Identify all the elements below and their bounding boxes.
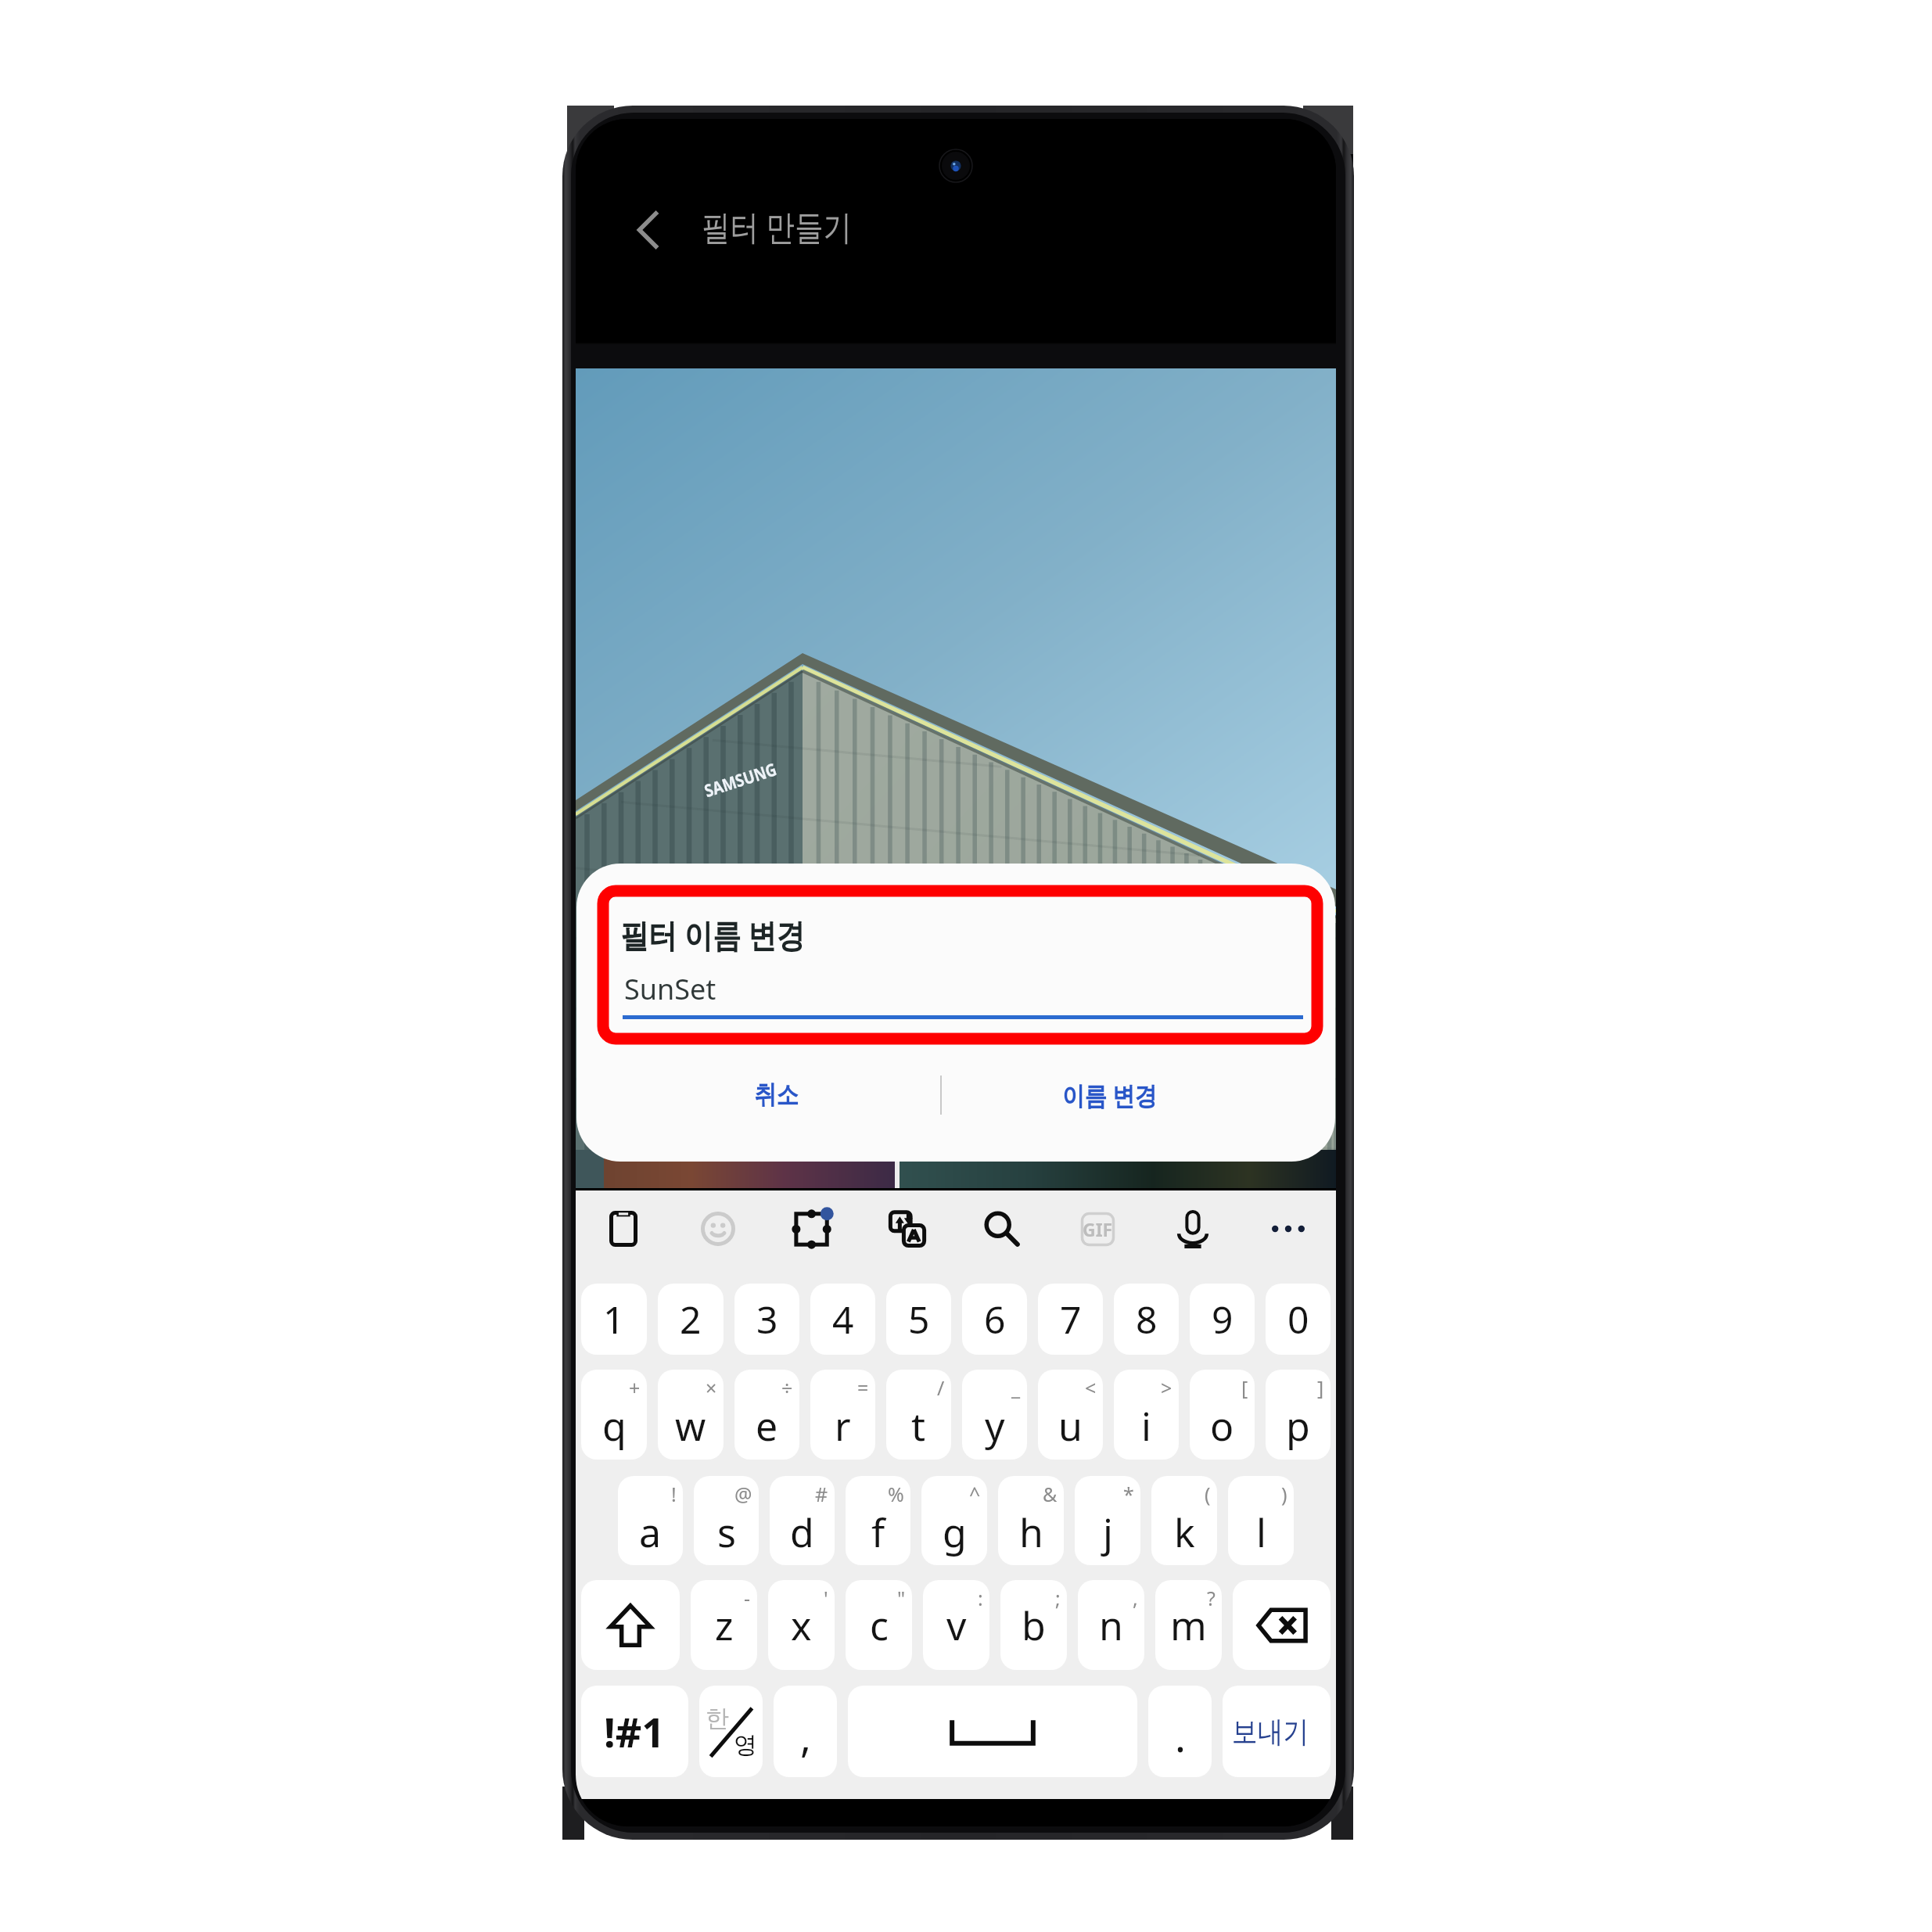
staticText: 한 bbox=[706, 1704, 729, 1733]
button[interactable]: 이름 변경 bbox=[942, 1048, 1335, 1142]
staticText: , bbox=[1133, 1585, 1138, 1611]
button[interactable]: 취소 bbox=[576, 1048, 941, 1142]
button[interactable]: w bbox=[658, 1370, 724, 1460]
staticText: & bbox=[1043, 1481, 1058, 1507]
staticText: l bbox=[1256, 1506, 1266, 1559]
button[interactable]: Backspace bbox=[1233, 1580, 1330, 1670]
button[interactable]: 1 bbox=[581, 1284, 647, 1355]
button[interactable]: 8 bbox=[1114, 1284, 1179, 1355]
button[interactable]: v bbox=[923, 1580, 989, 1670]
staticText: b bbox=[1022, 1599, 1046, 1652]
button[interactable]: 5 bbox=[886, 1284, 951, 1355]
staticText: m bbox=[1170, 1599, 1207, 1652]
button[interactable]: a bbox=[618, 1476, 683, 1565]
staticText: _ bbox=[1011, 1374, 1021, 1401]
staticText: k bbox=[1174, 1506, 1195, 1559]
button[interactable]: z bbox=[691, 1580, 757, 1670]
button[interactable]: r bbox=[810, 1370, 875, 1460]
staticText: n bbox=[1099, 1599, 1123, 1652]
button[interactable]: t bbox=[886, 1370, 951, 1460]
button[interactable]: Shift bbox=[581, 1580, 680, 1670]
button[interactable]: Translate bbox=[860, 1190, 954, 1267]
button[interactable]: Voice input bbox=[1145, 1190, 1241, 1267]
staticText: × bbox=[706, 1374, 717, 1401]
staticText: / bbox=[937, 1374, 945, 1401]
staticText: 4 bbox=[832, 1294, 854, 1345]
button[interactable]: e bbox=[734, 1370, 799, 1460]
button[interactable]: s bbox=[694, 1476, 759, 1565]
button[interactable]: 9 bbox=[1190, 1284, 1255, 1355]
button[interactable]: d bbox=[770, 1476, 835, 1565]
button[interactable]: y bbox=[962, 1370, 1027, 1460]
staticText: . bbox=[1175, 1708, 1186, 1764]
staticText: 보내기 bbox=[1232, 1713, 1309, 1751]
button[interactable]: Space bbox=[848, 1686, 1137, 1777]
button[interactable]: 7 bbox=[1038, 1284, 1103, 1355]
button[interactable]: Clipboard bbox=[576, 1190, 670, 1267]
button[interactable]: Emoji bbox=[670, 1190, 765, 1267]
staticText: = bbox=[857, 1374, 869, 1401]
staticText: + bbox=[629, 1374, 641, 1401]
staticText: h bbox=[1019, 1506, 1043, 1559]
button[interactable]: 4 bbox=[810, 1284, 875, 1355]
staticText: SAMSUNG bbox=[701, 757, 779, 802]
button[interactable]: 6 bbox=[962, 1284, 1027, 1355]
staticText: 5 bbox=[908, 1294, 930, 1345]
button[interactable]: Symbols bbox=[581, 1686, 688, 1777]
button[interactable]: p bbox=[1266, 1370, 1330, 1460]
staticText: SunSet bbox=[624, 970, 716, 1008]
staticText: 1 bbox=[603, 1294, 625, 1345]
staticText: " bbox=[897, 1585, 906, 1611]
button[interactable]: b bbox=[1000, 1580, 1067, 1670]
button[interactable]: q bbox=[581, 1370, 647, 1460]
staticText: p bbox=[1286, 1399, 1310, 1453]
button[interactable]: n bbox=[1078, 1580, 1144, 1670]
button[interactable]: l bbox=[1228, 1476, 1294, 1565]
button[interactable]: , bbox=[774, 1686, 837, 1777]
staticText: o bbox=[1210, 1399, 1234, 1453]
staticText: x bbox=[791, 1599, 812, 1652]
staticText: 6 bbox=[984, 1294, 1006, 1345]
button[interactable]: o bbox=[1190, 1370, 1255, 1460]
staticText: ; bbox=[1055, 1585, 1061, 1611]
staticText: GIF bbox=[1083, 1217, 1113, 1241]
button[interactable]: Back bbox=[601, 183, 695, 277]
staticText: , bbox=[800, 1708, 811, 1764]
button[interactable]: x bbox=[768, 1580, 835, 1670]
staticText: # bbox=[815, 1481, 828, 1507]
staticText: g bbox=[943, 1506, 967, 1559]
staticText: v bbox=[946, 1599, 967, 1652]
button[interactable]: 2 bbox=[658, 1284, 724, 1355]
button[interactable]: h bbox=[998, 1476, 1064, 1565]
button[interactable]: Search bbox=[954, 1190, 1050, 1267]
button[interactable]: 0 bbox=[1266, 1284, 1330, 1355]
button[interactable]: i bbox=[1114, 1370, 1179, 1460]
button[interactable]: 3 bbox=[734, 1284, 799, 1355]
staticText: ( bbox=[1205, 1481, 1211, 1507]
staticText: ? bbox=[1207, 1585, 1216, 1611]
staticText: ^ bbox=[969, 1481, 981, 1507]
button[interactable]: g bbox=[921, 1476, 987, 1565]
button[interactable]: j bbox=[1075, 1476, 1140, 1565]
button[interactable]: GIF bbox=[1050, 1190, 1145, 1267]
button[interactable]: Send bbox=[1223, 1686, 1330, 1777]
staticText: ' bbox=[824, 1585, 828, 1611]
staticText: a bbox=[639, 1506, 662, 1559]
button[interactable]: f bbox=[846, 1476, 910, 1565]
button[interactable]: . bbox=[1148, 1686, 1212, 1777]
button[interactable]: u bbox=[1038, 1370, 1103, 1460]
staticText: e bbox=[756, 1399, 778, 1453]
staticText: 8 bbox=[1136, 1294, 1158, 1345]
staticText: !#1 bbox=[604, 1704, 666, 1759]
button[interactable]: k bbox=[1151, 1476, 1217, 1565]
staticText: * bbox=[1123, 1481, 1134, 1507]
staticText: y bbox=[985, 1399, 1005, 1453]
button[interactable]: Language bbox=[699, 1686, 763, 1777]
button[interactable]: m bbox=[1155, 1580, 1222, 1670]
button[interactable]: More options bbox=[1241, 1190, 1336, 1267]
staticText: 9 bbox=[1212, 1294, 1234, 1345]
button[interactable]: Sticker bbox=[765, 1190, 860, 1267]
staticText: 7 bbox=[1060, 1294, 1082, 1345]
staticText: 취소 bbox=[754, 1079, 798, 1111]
button[interactable]: c bbox=[846, 1580, 912, 1670]
